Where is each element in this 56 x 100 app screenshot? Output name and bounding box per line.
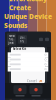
button[interactable]: New Project [7,33,16,45]
button[interactable] [8,67,48,71]
button[interactable] [8,62,48,67]
staticText: Select Kit [13,47,26,51]
staticText: Library [19,36,25,43]
button[interactable]: Library [18,35,27,44]
button[interactable] [8,52,48,57]
button[interactable]: Tab 4 [39,98,51,100]
button[interactable]: Sound pad [29,85,42,96]
button[interactable]: Sound pad [13,85,26,96]
staticText: Effortlessly Create [9,0,47,12]
button[interactable] [8,57,48,62]
staticText: Unique Device Sounds [4,12,52,30]
staticText: OK [38,79,42,83]
staticText: Cancel [27,79,37,83]
button[interactable]: OK [38,79,42,83]
button[interactable]: Cancel [27,79,37,83]
button[interactable]: Tab 1 [5,98,16,100]
button[interactable]: Tab 3 [28,98,39,100]
button[interactable]: Tab 2 [16,98,28,100]
staticText: New Project [8,34,14,45]
